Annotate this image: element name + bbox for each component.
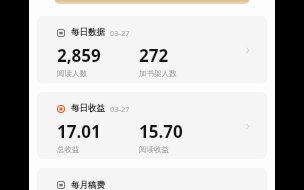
staticText: 每日数据 xyxy=(71,27,105,38)
button[interactable]: 查看详情 xyxy=(239,42,255,58)
staticText: 03-27 xyxy=(110,28,130,38)
staticText: 2,859 xyxy=(57,44,101,67)
staticText: 17.01 xyxy=(57,120,101,143)
staticText: 阅读收益 xyxy=(139,145,169,154)
staticText: 阅读人数 xyxy=(57,69,87,78)
staticText: 总收益 xyxy=(57,145,80,154)
staticText: 15.70 xyxy=(139,120,183,143)
staticText: 加书架人数 xyxy=(139,69,177,78)
button[interactable]: 每日数据 xyxy=(37,16,267,83)
button[interactable]: 查看详情 xyxy=(239,118,255,134)
button[interactable]: 每月稿费 xyxy=(37,168,267,190)
staticText: 03-27 xyxy=(110,104,130,114)
button[interactable] xyxy=(55,0,249,4)
button[interactable]: 每日收益 xyxy=(37,92,267,159)
staticText: 每月稿费 xyxy=(71,180,105,190)
staticText: 每日收益 xyxy=(71,103,105,114)
staticText: 272 xyxy=(139,44,169,67)
